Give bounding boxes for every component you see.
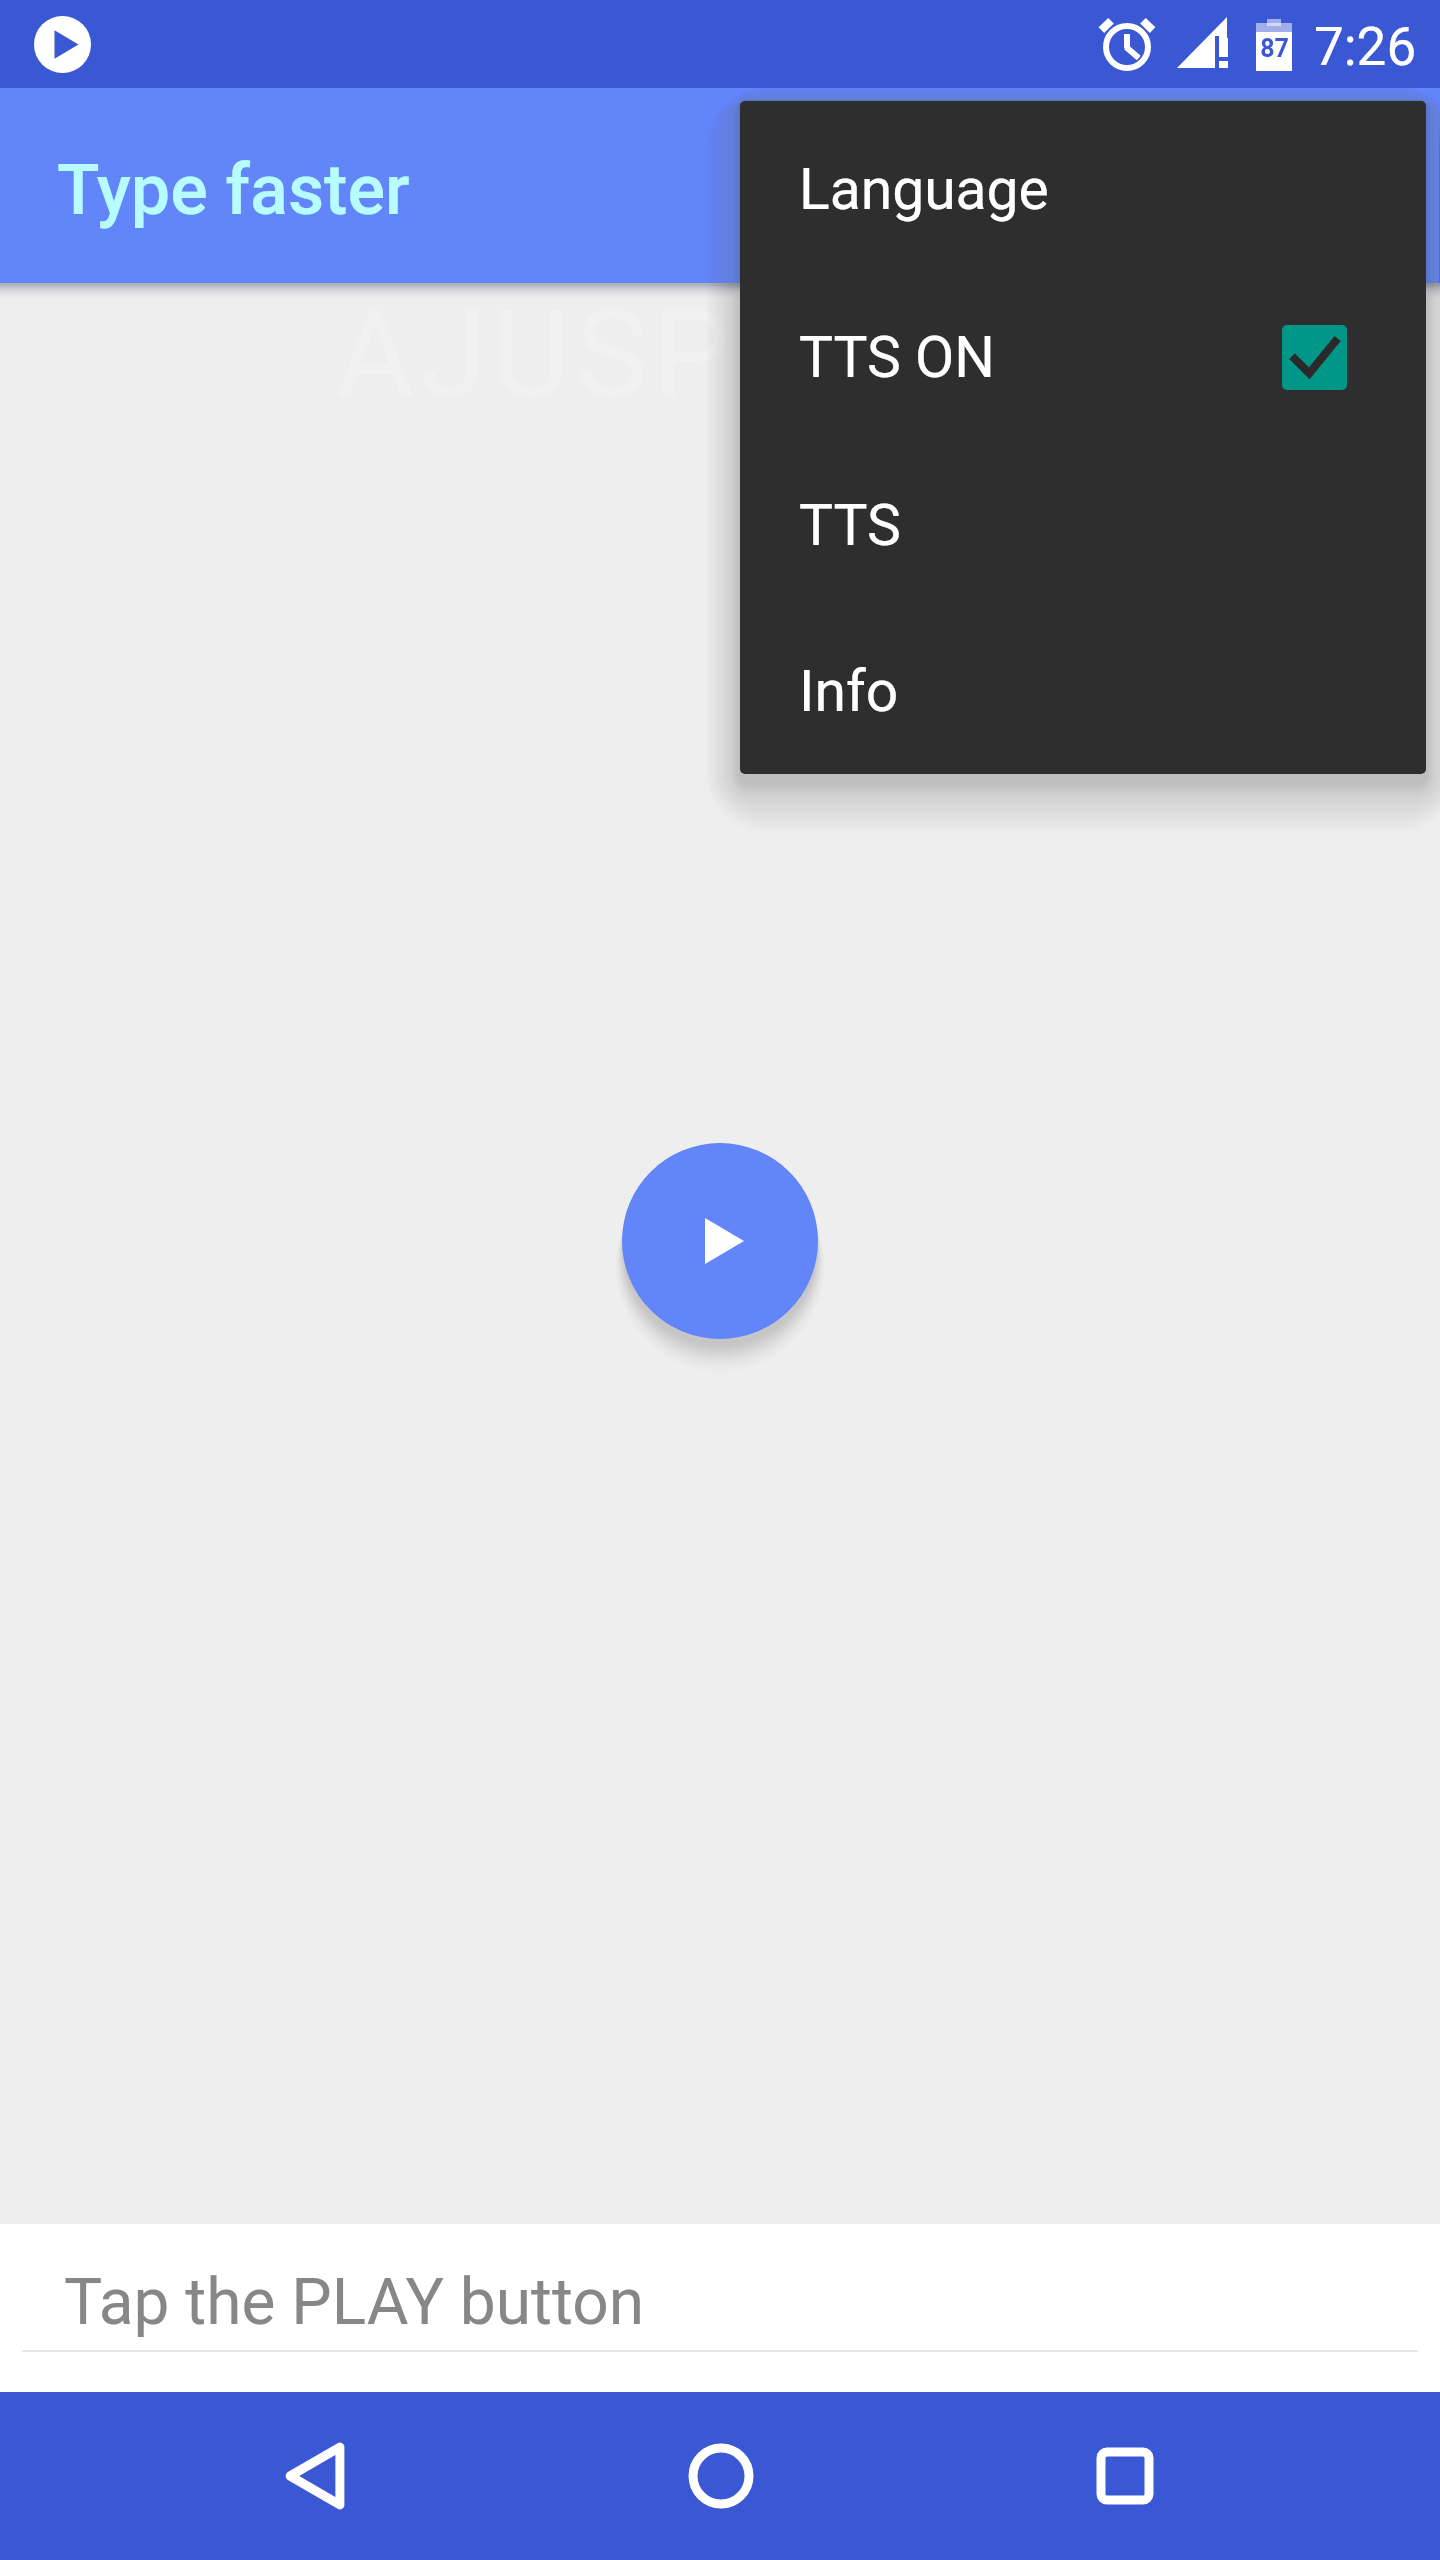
button[interactable]: Recents (1035, 2392, 1215, 2560)
staticText: TTS (799, 492, 901, 559)
button[interactable]: Info (740, 609, 1426, 774)
staticText: Type faster (57, 149, 410, 231)
staticText: AJUSP (336, 285, 736, 426)
staticText: Language (799, 156, 1049, 223)
staticText: Tap the PLAY button (64, 2265, 645, 2340)
staticText: 87 (1260, 34, 1289, 63)
button[interactable]: Play (622, 1143, 818, 1339)
button[interactable]: Back (225, 2392, 405, 2560)
button[interactable]: TTS ON (740, 273, 1426, 441)
staticText: Info (799, 658, 899, 725)
staticText: TTS ON (799, 324, 995, 391)
button[interactable]: TTS (740, 441, 1426, 609)
button[interactable]: Language (740, 105, 1426, 273)
button[interactable]: Home (631, 2392, 811, 2560)
staticText: 7:26 (1314, 16, 1417, 78)
